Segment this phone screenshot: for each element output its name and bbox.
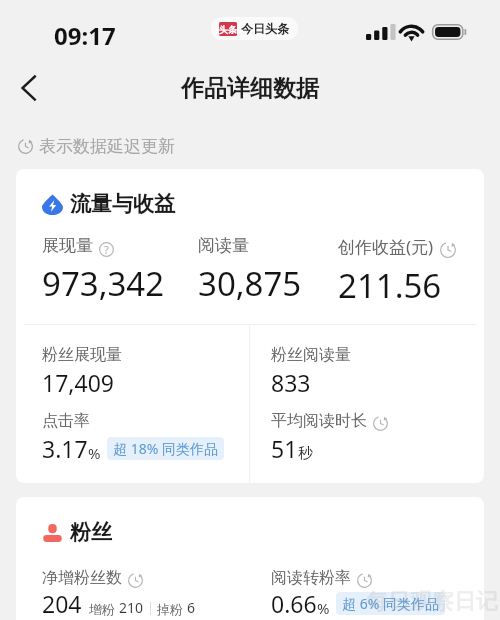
staticText: 6	[187, 598, 196, 617]
staticText: 211.56	[338, 263, 442, 308]
staticText: 点击率	[42, 411, 90, 431]
staticText: 833	[271, 367, 311, 398]
staticText: 973,342	[42, 261, 165, 306]
staticText: 作品详细数据	[181, 74, 319, 103]
staticText: 净增粉丝数	[42, 568, 122, 588]
staticText: 阅读转粉率	[271, 568, 351, 588]
staticText: 创作收益(元)	[338, 235, 434, 258]
staticText: 0.66	[271, 588, 317, 619]
staticText: %	[88, 443, 101, 463]
staticText: %	[317, 598, 330, 618]
staticText: 掉粉	[157, 601, 183, 617]
staticText: 210	[119, 598, 144, 617]
staticText: 09:17	[54, 19, 116, 52]
button[interactable]: Back	[4, 64, 52, 112]
staticText: 每日观察日记	[366, 588, 498, 616]
staticText: 展现量	[42, 235, 93, 256]
staticText: 表示数据延迟更新	[39, 136, 175, 157]
staticText: 秒	[298, 444, 313, 463]
staticText: ?	[104, 242, 109, 257]
staticText: 17,409	[42, 367, 114, 398]
staticText: 粉丝展现量	[42, 345, 122, 365]
staticText: 阅读量	[198, 235, 249, 256]
staticText: 头条	[219, 24, 237, 35]
staticText: 超 6% 同类作品	[342, 594, 439, 613]
staticText: 超 18% 同类作品	[113, 439, 218, 458]
staticText: 30,875	[198, 261, 302, 306]
staticText: 流量与收益	[70, 191, 175, 217]
staticText: 204	[42, 588, 82, 619]
staticText: 今日头条	[241, 21, 289, 36]
staticText: 增粉	[89, 601, 115, 617]
staticText: 平均阅读时长	[271, 411, 367, 431]
staticText: 粉丝	[70, 519, 112, 545]
staticText: 51	[271, 433, 298, 464]
staticText: 粉丝阅读量	[271, 345, 351, 365]
staticText: 3.17	[42, 433, 88, 464]
